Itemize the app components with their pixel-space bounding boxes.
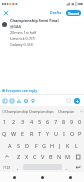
button[interactable]: F bbox=[32, 139, 40, 151]
button[interactable]: 5 bbox=[36, 116, 44, 127]
staticText: T bbox=[38, 130, 42, 137]
button[interactable]: Add location bbox=[29, 97, 36, 104]
button[interactable]: S bbox=[14, 139, 23, 151]
button[interactable]: Championship bbox=[5, 106, 29, 116]
button[interactable]: Shift bbox=[0, 151, 14, 162]
button[interactable]: 3 bbox=[18, 116, 27, 127]
staticText: 9 bbox=[70, 118, 74, 125]
button[interactable]: K bbox=[64, 139, 72, 151]
staticText: F bbox=[35, 142, 38, 149]
button[interactable]: W bbox=[9, 127, 18, 139]
button[interactable]: Champion bbox=[54, 106, 79, 116]
staticText: ?123 bbox=[3, 165, 11, 170]
button[interactable]: M bbox=[63, 151, 71, 162]
staticText: C bbox=[33, 153, 37, 160]
button[interactable]: ?123 bbox=[0, 162, 14, 172]
staticText: N bbox=[57, 153, 62, 160]
button[interactable]: D bbox=[23, 139, 32, 151]
staticText: 6 bbox=[46, 118, 50, 125]
button[interactable]: 9 bbox=[68, 116, 76, 127]
button[interactable]: U bbox=[52, 127, 60, 139]
button[interactable]: Back bbox=[0, 172, 28, 182]
button[interactable]: Backspace bbox=[71, 151, 84, 162]
button[interactable]: Close bbox=[1, 8, 10, 17]
button[interactable]: Add poll bbox=[15, 97, 22, 104]
button[interactable]: E bbox=[18, 127, 27, 139]
button[interactable]: C bbox=[31, 151, 39, 162]
staticText: Galway 0-3(3) bbox=[10, 42, 34, 47]
button[interactable]: Add emoji bbox=[22, 97, 29, 104]
staticText: 5 bbox=[38, 118, 42, 125]
button[interactable]: P bbox=[76, 127, 84, 139]
staticText: , bbox=[17, 164, 19, 171]
button[interactable]: Q bbox=[0, 127, 9, 139]
staticText: X bbox=[25, 153, 29, 160]
staticText: R bbox=[30, 130, 34, 137]
button[interactable]: A bbox=[5, 139, 14, 151]
button[interactable]: B bbox=[47, 151, 55, 162]
button[interactable]: 2 bbox=[9, 116, 18, 127]
button[interactable]: More suggestions bbox=[79, 106, 84, 116]
button[interactable]: Add GIF bbox=[8, 97, 15, 104]
button[interactable]: V bbox=[39, 151, 47, 162]
staticText: U bbox=[54, 130, 59, 137]
button[interactable]: Add tweet bbox=[74, 98, 80, 104]
button[interactable]: Y bbox=[44, 127, 52, 139]
staticText: Drafts bbox=[50, 10, 62, 15]
staticText: V bbox=[41, 153, 45, 160]
staticText: 4 bbox=[30, 118, 34, 125]
button[interactable]: Recents bbox=[56, 172, 84, 182]
staticText: Championships bbox=[29, 109, 54, 114]
button[interactable]: Add photo bbox=[1, 97, 8, 104]
button[interactable]: Drafts bbox=[49, 9, 63, 16]
button[interactable]: T bbox=[36, 127, 44, 139]
staticText: Y bbox=[46, 130, 50, 137]
button[interactable]: 0 bbox=[76, 116, 84, 127]
staticText: Championship Semi Final bbox=[10, 18, 59, 23]
button[interactable]: , bbox=[14, 162, 22, 172]
button[interactable]: 4 bbox=[27, 116, 36, 127]
button[interactable]: Everyone can reply bbox=[2, 86, 84, 94]
button[interactable]: L bbox=[72, 139, 80, 151]
button[interactable]: Profile photo bbox=[2, 22, 7, 27]
button[interactable]: R bbox=[27, 127, 36, 139]
button[interactable]: Enter bbox=[71, 162, 84, 172]
staticText: O bbox=[70, 130, 75, 137]
button[interactable]: Home bbox=[28, 172, 56, 182]
staticText: 20mins 1st half bbox=[10, 30, 37, 35]
button[interactable]: Tweet bbox=[66, 10, 81, 16]
staticText: Champion bbox=[58, 109, 75, 114]
button[interactable]: 6 bbox=[44, 116, 52, 127]
staticText: L bbox=[75, 142, 78, 149]
staticText: Z bbox=[17, 153, 21, 160]
button[interactable]: . bbox=[63, 162, 71, 172]
staticText: I bbox=[63, 130, 65, 137]
staticText: . bbox=[66, 164, 68, 171]
staticText: Championship bbox=[5, 109, 29, 114]
button[interactable]: O bbox=[68, 127, 76, 139]
staticText: J bbox=[59, 142, 61, 149]
staticText: E bbox=[21, 130, 25, 137]
button[interactable]: H bbox=[48, 139, 56, 151]
staticText: A bbox=[8, 142, 12, 149]
button[interactable]: 8 bbox=[60, 116, 68, 127]
staticText: D bbox=[25, 142, 30, 149]
staticText: 7 bbox=[54, 118, 58, 125]
staticText: @GAA bbox=[10, 24, 22, 29]
staticText: Everyone can reply bbox=[6, 88, 38, 92]
button[interactable]: J bbox=[56, 139, 64, 151]
button[interactable]: I bbox=[60, 127, 68, 139]
button[interactable]: Z bbox=[14, 151, 23, 162]
staticText: S bbox=[17, 142, 21, 149]
button[interactable]: 7 bbox=[52, 116, 60, 127]
staticText: Q bbox=[2, 130, 7, 137]
staticText: 8 bbox=[62, 118, 66, 125]
button[interactable]: X bbox=[23, 151, 31, 162]
button[interactable]: G bbox=[40, 139, 48, 151]
staticText: Tweet bbox=[68, 11, 80, 16]
button[interactable]: 1 bbox=[0, 116, 9, 127]
button[interactable]: Championships bbox=[29, 106, 54, 116]
button[interactable]: N bbox=[55, 151, 63, 162]
staticText: W bbox=[11, 130, 17, 137]
